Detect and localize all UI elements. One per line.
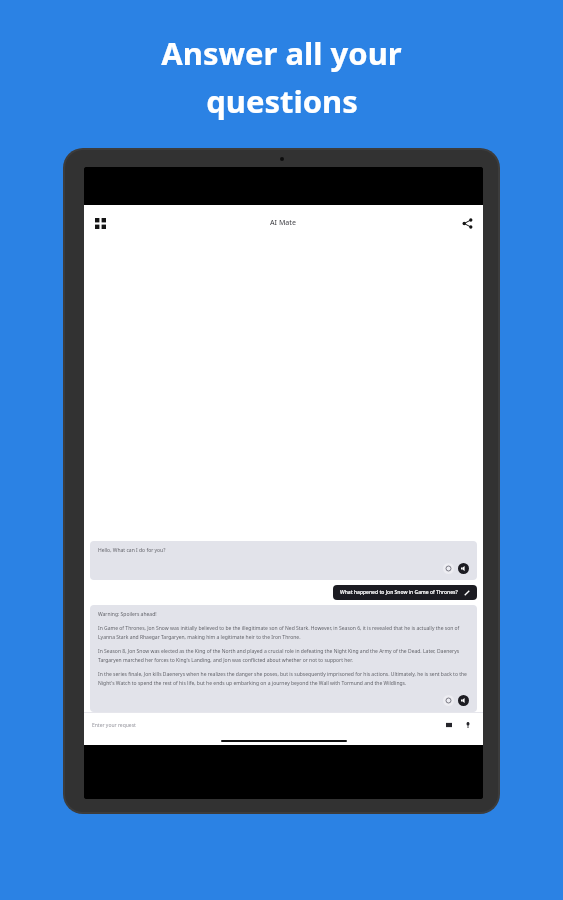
button[interactable]: Warning: Spoilers ahead!: [90, 605, 477, 712]
button[interactable]: Read aloud: [458, 695, 469, 706]
button[interactable]: Voice input: [461, 718, 475, 732]
staticText: Answer all your: [161, 32, 402, 74]
staticText: In the series finale, Jon kills Daenerys…: [98, 671, 469, 687]
button[interactable]: Copy: [443, 695, 454, 706]
button[interactable]: Hello, What can I do for you?: [90, 541, 477, 580]
staticText: Warning: Spoilers ahead!: [98, 611, 157, 618]
staticText: questions: [206, 80, 358, 122]
staticText: Hello, What can I do for you?: [98, 547, 166, 554]
button[interactable]: Share: [453, 209, 481, 237]
button[interactable]: Read aloud: [458, 563, 469, 574]
staticText: Enter your request: [92, 722, 442, 729]
staticText: In Game of Thrones, Jon Snow was initial…: [98, 625, 469, 641]
button[interactable]: Copy: [443, 563, 454, 574]
staticText: What happened to Jon Snow in Game of Thr…: [340, 589, 458, 596]
button[interactable]: Attach image: [442, 718, 456, 732]
button[interactable]: Apps menu: [86, 209, 114, 237]
staticText: In Season 8, Jon Snow was elected as the…: [98, 648, 469, 664]
staticText: AI Mate: [270, 218, 297, 228]
button[interactable]: Enter your request: [84, 713, 483, 737]
button[interactable]: What happened to Jon Snow in Game of Thr…: [333, 585, 477, 600]
